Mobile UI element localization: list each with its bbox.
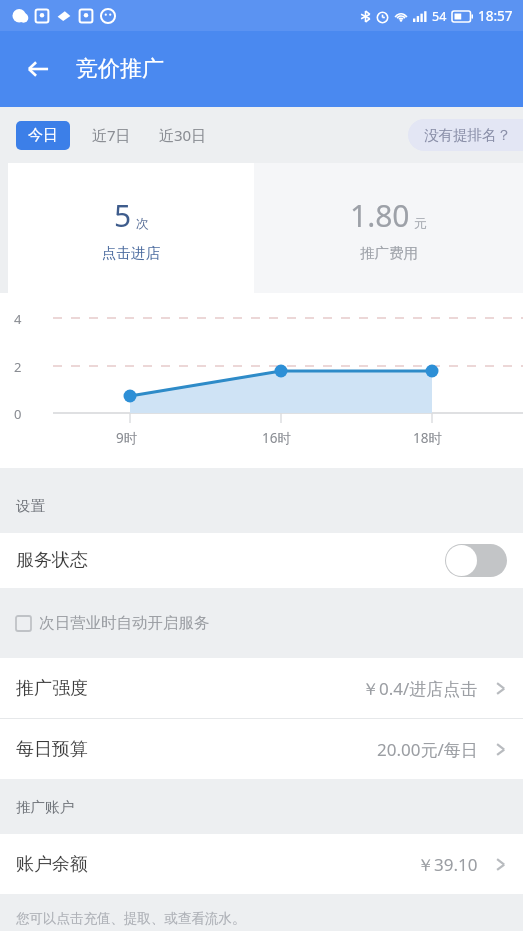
staticText: 次日营业时自动开启服务 <box>39 613 210 633</box>
staticText: 近30日 <box>159 125 207 145</box>
button[interactable]: Back <box>14 45 62 93</box>
button[interactable]: 推广强度 <box>0 658 523 718</box>
staticText: 账户余额 <box>16 853 88 876</box>
staticText: 次 <box>136 215 149 231</box>
staticText: 推广强度 <box>16 677 88 700</box>
staticText: 每日预算 <box>16 738 88 761</box>
staticText: 18:57 <box>478 7 513 25</box>
staticText: 推广费用 <box>360 244 418 262</box>
staticText: ￥0.4/进店点击 <box>362 677 478 700</box>
staticText: 18时 <box>413 429 442 447</box>
button[interactable]: 5 <box>8 163 254 293</box>
staticText: 0 <box>14 405 22 423</box>
button[interactable]: 服务状态开关 <box>445 544 507 577</box>
button[interactable]: 1.80 <box>254 163 523 293</box>
staticText: 没有提排名？ <box>424 126 511 144</box>
staticText: 9时 <box>116 429 138 447</box>
button[interactable]: 每日预算 <box>0 719 523 779</box>
button[interactable]: 账户余额 <box>0 834 523 894</box>
staticText: 您可以点击充值、提取、或查看流水。 <box>16 910 246 927</box>
staticText: 竞价推广 <box>76 55 164 83</box>
staticText: 设置 <box>16 497 45 515</box>
button[interactable]: 没有提排名？ <box>408 119 523 151</box>
staticText: 元 <box>414 215 427 231</box>
staticText: 1.80 <box>350 195 410 236</box>
staticText: 4 <box>14 310 22 328</box>
button[interactable]: 近30日 <box>137 119 213 151</box>
staticText: 推广账户 <box>16 798 74 816</box>
staticText: 点击进店 <box>102 244 160 262</box>
staticText: ￥39.10 <box>417 853 478 876</box>
button[interactable]: 近7日 <box>70 119 137 151</box>
staticText: 20.00元/每日 <box>377 738 478 761</box>
button[interactable]: 服务状态 <box>0 533 523 588</box>
staticText: 5 <box>114 195 132 236</box>
staticText: 16时 <box>262 429 291 447</box>
staticText: 今日 <box>28 126 58 145</box>
staticText: 54 <box>432 8 447 25</box>
staticText: 服务状态 <box>16 549 88 572</box>
staticText: 2 <box>14 358 22 376</box>
button[interactable]: 次日营业时自动开启服务 <box>0 588 523 658</box>
staticText: 近7日 <box>92 125 131 145</box>
button[interactable]: 今日 <box>16 121 70 150</box>
